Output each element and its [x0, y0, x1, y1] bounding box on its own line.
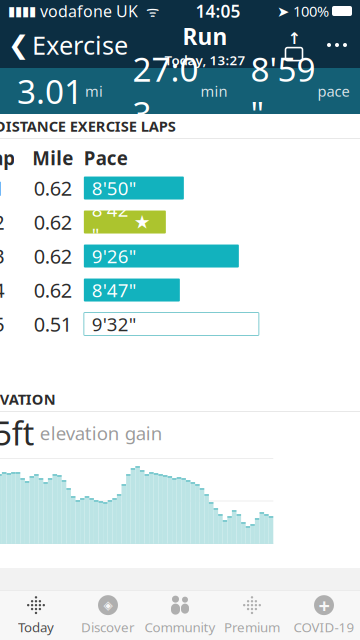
staticText: pace — [317, 81, 349, 101]
staticText: Exercise — [32, 28, 128, 62]
staticText: DISTANCE EXERCISE LAPS — [0, 116, 176, 136]
staticText: ᯤ — [138, 1, 159, 21]
staticText: 27:03 — [132, 47, 198, 135]
staticText: 5 — [0, 311, 4, 337]
button[interactable]: Community — [144, 591, 216, 640]
staticText: 8'42" — [92, 197, 129, 247]
staticText: min — [200, 81, 227, 101]
staticText: ❮ — [8, 31, 29, 59]
staticText: Premium — [224, 618, 280, 636]
staticText: 14:05 — [195, 0, 240, 22]
staticText: 115ft — [0, 412, 35, 454]
staticText: Community — [144, 618, 215, 636]
staticText: 8'59" — [250, 47, 315, 135]
staticText: mi — [85, 81, 103, 101]
staticText: 2 — [0, 209, 4, 235]
staticText: vodafone UK — [36, 0, 138, 22]
staticText: + — [318, 592, 329, 618]
staticText: 0.62 — [34, 277, 72, 303]
staticText: 0.51 — [34, 311, 72, 337]
staticText: Today — [18, 618, 54, 636]
staticText: Discover — [81, 618, 135, 636]
staticText: 0.62 — [34, 175, 72, 201]
staticText: Lap — [0, 146, 15, 170]
button[interactable]: ❮ — [0, 22, 136, 68]
staticText: ➤ 100% — [277, 1, 329, 21]
staticText: Today, 13:27 — [164, 51, 245, 69]
button[interactable]: Premium — [216, 591, 288, 640]
button[interactable]: + — [288, 591, 360, 640]
staticText: 1 — [0, 175, 4, 201]
button[interactable]: Today — [0, 591, 72, 640]
staticText: 4 — [0, 277, 4, 303]
staticText: 3.01 — [17, 69, 83, 113]
staticText: ELEVATION — [0, 389, 56, 409]
staticText: 3 — [0, 243, 4, 269]
staticText: Pace — [84, 146, 128, 170]
button[interactable]: Share — [274, 22, 314, 68]
staticText: ▮▮▮▮ — [8, 3, 36, 18]
staticText: Mile — [32, 146, 73, 170]
staticText: 8'47" — [92, 278, 137, 302]
staticText: ★ — [134, 211, 151, 233]
staticText: 0.62 — [34, 209, 72, 235]
staticText: 9'26" — [92, 244, 137, 268]
staticText: 0.62 — [34, 243, 72, 269]
staticText: 8'50" — [92, 176, 137, 200]
staticText: Run — [182, 21, 227, 51]
staticText: COVID-19 — [293, 618, 354, 636]
staticText: ↑ — [287, 29, 300, 48]
staticText: elevation gain — [35, 421, 163, 445]
button[interactable]: ◈ — [72, 591, 144, 640]
button[interactable]: More options — [314, 22, 360, 68]
staticText: ◈ — [103, 598, 112, 612]
staticText: 9'32" — [92, 312, 137, 336]
